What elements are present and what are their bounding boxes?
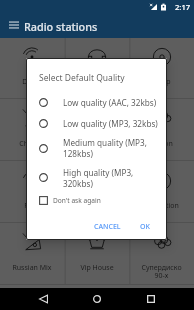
button[interactable]: Back xyxy=(28,288,58,310)
staticText: Супердиско 90-х xyxy=(141,263,182,280)
button[interactable]: Recent apps xyxy=(136,288,166,310)
button[interactable]: Pop xyxy=(64,160,129,222)
staticText: Chillout xyxy=(19,139,45,149)
staticText: Radio stations xyxy=(24,19,98,34)
button[interactable]: Don't ask again xyxy=(26,192,167,207)
button[interactable]: Chillout xyxy=(0,98,64,160)
staticText: Pop xyxy=(90,201,103,211)
button[interactable]: Fusion xyxy=(129,98,194,160)
button[interactable]: Vip House xyxy=(64,222,129,284)
staticText: Deep xyxy=(153,77,171,87)
button[interactable]: Medium quality (MP3, 128kbs) xyxy=(26,133,167,163)
staticText: Fusion xyxy=(151,139,173,149)
staticText: Relaxation xyxy=(144,201,179,211)
button[interactable]: Trance xyxy=(64,36,129,98)
button[interactable]: High quality (MP3, 320kbs) xyxy=(26,163,167,192)
staticText: High quality (MP3, 320kbs) xyxy=(63,167,134,189)
button[interactable]: Супердиско 90-х xyxy=(129,222,194,284)
button[interactable]: Lounge xyxy=(64,98,129,160)
staticText: Rock xyxy=(24,201,40,211)
staticText: Select Default Quality xyxy=(39,72,125,84)
staticText: Lounge xyxy=(84,139,109,149)
button[interactable]: Russian Mix xyxy=(0,222,64,284)
staticText: Low quality (MP3, 32kbs) xyxy=(63,118,158,129)
button[interactable]: CANCEL xyxy=(89,219,126,235)
staticText: Vip House xyxy=(80,263,114,273)
staticText: CANCEL xyxy=(94,222,121,232)
staticText: 2:17 xyxy=(175,2,191,12)
staticText: Don't ask again xyxy=(53,196,101,205)
button[interactable]: Low quality (AAC, 32kbs) xyxy=(26,92,167,113)
button[interactable]: Dance xyxy=(0,36,64,98)
button[interactable]: Deep xyxy=(129,36,194,98)
staticText: Dance xyxy=(22,77,43,87)
staticText: Trance xyxy=(86,77,108,87)
button[interactable]: Relaxation xyxy=(129,160,194,222)
button[interactable]: OK xyxy=(135,219,155,235)
staticText: Medium quality (MP3, 128kbs) xyxy=(63,137,147,159)
staticText: Low quality (AAC, 32kbs) xyxy=(63,97,157,108)
staticText: Russian Mix xyxy=(12,263,52,273)
staticText: OK xyxy=(140,222,150,232)
button[interactable]: Rock xyxy=(0,160,64,222)
button[interactable]: Open navigation menu xyxy=(5,18,23,36)
button[interactable]: Low quality (MP3, 32kbs) xyxy=(26,113,167,133)
button[interactable]: Home xyxy=(82,288,112,310)
